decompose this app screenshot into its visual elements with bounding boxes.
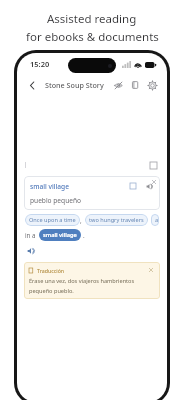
button[interactable]: Close [149,177,158,186]
button[interactable]: small village [24,176,160,210]
button[interactable]: Once upon a time [25,214,80,226]
staticText: small village [43,231,77,239]
staticText: , [80,216,82,224]
button[interactable]: Traducción [24,262,160,299]
button[interactable]: two hungry travelers [85,214,148,226]
button[interactable]: Bookmarks [128,78,142,92]
staticText: Once upon a time [29,216,76,224]
staticText: in a [25,231,36,239]
staticText: . [83,231,85,239]
button[interactable]: Dismiss translation [147,266,155,274]
staticText: small village [30,182,69,191]
button[interactable]: Settings [145,78,159,92]
staticText: two hungry travelers [89,216,144,224]
staticText: 15:20 [30,59,50,69]
staticText: Traducción [37,267,65,274]
button[interactable]: Hide translations [111,78,125,92]
staticText: pueblo pequeño [30,196,81,205]
button[interactable]: Bookmark page [148,160,159,171]
button[interactable]: arrived [151,214,159,226]
button[interactable]: small village [39,229,81,241]
staticText: Stone Soup Story [45,80,104,90]
staticText: Assisted reading [47,11,137,27]
button[interactable]: Listen [144,181,154,191]
button[interactable]: Copy [128,181,138,191]
staticText: for ebooks & documents [26,29,159,45]
button[interactable]: Back [25,78,39,92]
staticText: pequeño pueblo. [29,287,74,295]
staticText: Érase una vez, dos viajeros hambrientos … [29,277,155,285]
button[interactable]: Play sentence [25,245,36,256]
